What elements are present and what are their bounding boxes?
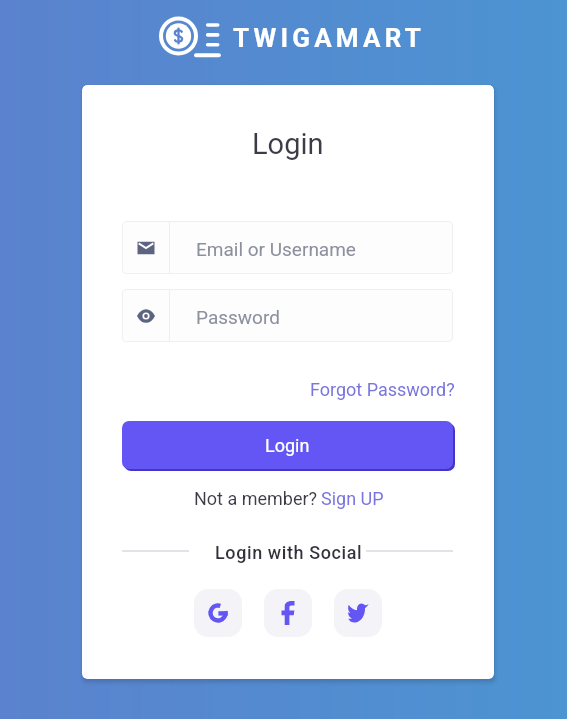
staticText: Login (252, 127, 324, 161)
button[interactable]: Password (122, 289, 453, 342)
staticText: Login (265, 435, 310, 456)
staticText: Password (196, 306, 280, 328)
staticText: Login with Social (215, 542, 363, 563)
staticText: Email or Username (196, 238, 356, 260)
button[interactable]: Google (194, 589, 242, 637)
button[interactable]: Login (122, 421, 453, 469)
button[interactable]: Sign UP (321, 488, 384, 509)
staticText: Not a member? (194, 488, 318, 509)
button[interactable]: Facebook (264, 589, 312, 637)
staticText: TWIGAMART (233, 23, 426, 53)
button[interactable]: Email or Username (122, 221, 453, 274)
button[interactable]: Forgot Password? (310, 379, 455, 400)
button[interactable]: Twitter (334, 589, 382, 637)
